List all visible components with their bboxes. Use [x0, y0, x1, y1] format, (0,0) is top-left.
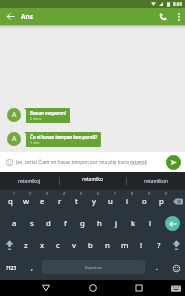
staticText: q [8, 196, 13, 207]
button[interactable]: l [142, 212, 159, 234]
button[interactable] [61, 280, 123, 296]
staticText: 4 [63, 191, 65, 196]
staticText: 1 min [30, 140, 40, 145]
staticText: b [88, 240, 93, 251]
button[interactable] [172, 8, 185, 25]
button[interactable] [159, 212, 185, 234]
staticText: 1 [13, 191, 15, 196]
staticText: Ĉu vi havas tempon iom paroli? [30, 134, 97, 140]
button[interactable]: c [50, 234, 66, 256]
button[interactable]: y [85, 190, 102, 212]
staticText: t [75, 196, 78, 207]
button[interactable] [166, 155, 181, 170]
staticText: 3 [46, 191, 48, 196]
button[interactable]: retamikon [127, 172, 185, 190]
staticText: m [121, 240, 129, 251]
staticText: retamikoj [18, 178, 41, 185]
button[interactable]: u [102, 190, 119, 212]
button[interactable]: . [147, 256, 167, 280]
staticText: retamiko [82, 176, 104, 183]
staticText: 6 [97, 191, 99, 196]
button[interactable]: v [66, 234, 82, 256]
button[interactable]: ?123 [0, 256, 23, 280]
button[interactable]: j [108, 212, 125, 234]
staticText: Bonan vesperon! [30, 110, 66, 116]
staticText: p [159, 196, 164, 207]
button[interactable] [167, 256, 185, 280]
button[interactable] [170, 190, 185, 212]
button[interactable]: w [18, 190, 34, 212]
staticText: Esperanto [85, 265, 103, 270]
staticText: Jes, certe! Ĉiam mi havas tempon por mia… [16, 159, 147, 165]
button[interactable] [0, 280, 61, 296]
button[interactable]: Esperanto [42, 260, 145, 274]
staticText: 2 [29, 191, 31, 196]
staticText: , [31, 263, 33, 273]
button[interactable]: b [82, 234, 99, 256]
staticText: d [46, 218, 51, 229]
button[interactable]: n [99, 234, 116, 256]
button[interactable]: z [18, 234, 34, 256]
button[interactable]: q [2, 190, 18, 212]
button[interactable] [0, 234, 18, 256]
staticText: ? [157, 240, 161, 251]
staticText: g [80, 218, 85, 229]
button[interactable]: m [116, 234, 133, 256]
staticText: f [64, 218, 67, 229]
staticText: 8:00 [173, 1, 182, 7]
staticText: w [23, 196, 30, 207]
button[interactable]: t [68, 190, 85, 212]
button[interactable]: k [125, 212, 142, 234]
button[interactable]: retamiko [60, 172, 126, 190]
button[interactable]: ? [150, 234, 167, 256]
button[interactable]: h [91, 212, 108, 234]
staticText: 7 [114, 191, 116, 196]
staticText: 5 [80, 191, 82, 196]
staticText: k [131, 218, 136, 229]
staticText: A [12, 110, 17, 120]
button[interactable]: a [6, 212, 23, 234]
staticText: x [40, 240, 45, 251]
staticText: Ans [21, 12, 33, 21]
staticText: . [156, 263, 158, 273]
staticText: retamikon [144, 178, 169, 185]
staticText: y [92, 196, 96, 207]
button[interactable]: r [51, 190, 68, 212]
staticText: c [56, 240, 60, 251]
button[interactable] [123, 280, 185, 296]
button[interactable]: Bonan vesperon! [26, 108, 70, 123]
button[interactable] [167, 234, 185, 256]
button[interactable]: e [34, 190, 51, 212]
button[interactable]: ! [133, 234, 150, 256]
button[interactable] [154, 8, 172, 25]
staticText: u [108, 196, 113, 207]
button[interactable]: retamikoj [0, 172, 59, 190]
button[interactable]: f [57, 212, 74, 234]
button[interactable]: o [136, 190, 153, 212]
button[interactable]: g [74, 212, 91, 234]
button[interactable]: , [23, 256, 40, 280]
staticText: 9 [148, 191, 150, 196]
staticText: j [115, 218, 118, 229]
button[interactable]: p [153, 190, 170, 212]
button[interactable]: i [119, 190, 136, 212]
staticText: l [149, 218, 152, 229]
staticText: 8 [131, 191, 133, 196]
button[interactable]: d [40, 212, 57, 234]
staticText: s [30, 218, 34, 229]
staticText: ?123 [6, 265, 17, 271]
button[interactable]: x [34, 234, 50, 256]
staticText: o [142, 196, 147, 207]
staticText: h [97, 218, 102, 229]
staticText: A [12, 134, 17, 144]
button[interactable]: Ĉu vi havas tempon iom paroli? [26, 132, 101, 147]
staticText: 0 [165, 191, 167, 196]
staticText: ! [140, 240, 143, 251]
staticText: i [126, 196, 129, 207]
button[interactable]: s [23, 212, 40, 234]
staticText: 2 mins [30, 116, 42, 121]
staticText: v [72, 240, 76, 251]
button[interactable] [0, 8, 20, 25]
staticText: z [24, 240, 28, 251]
